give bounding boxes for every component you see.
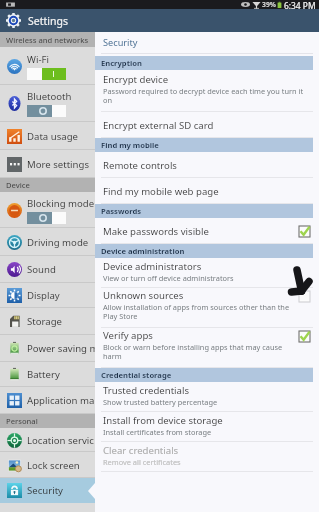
staticText: Lock screen [27,459,80,472]
staticText: Passwords [101,206,141,216]
button[interactable]: Encrypt device [95,70,319,112]
button[interactable]: Remote controls [95,152,319,178]
button[interactable]: Data usage [0,122,95,150]
staticText: View or turn off device administrators [103,273,234,283]
staticText: Security [27,484,64,497]
button[interactable]: Security [0,478,95,503]
staticText: Blocking mode [27,197,95,210]
staticText: Device administration [101,246,185,256]
staticText: Storage [27,315,62,328]
staticText: Display [27,289,60,302]
staticText: Wireless and networks [6,35,89,45]
button[interactable]: Lock screen [0,452,95,478]
button[interactable]: Clear credentials [95,442,319,472]
button[interactable]: Find my mobile web page [95,178,319,204]
button[interactable]: Blocking mode [0,192,95,228]
staticText: Clear credentials [103,444,179,457]
staticText: Password required to decrypt device each… [103,86,313,106]
staticText: Location servic [27,434,94,447]
staticText: 6:34 PM [284,0,316,9]
button[interactable]: Application ma [0,387,95,414]
button[interactable]: Trusted credentials [95,382,319,412]
staticText: Credential storage [101,370,172,380]
button[interactable]: Bluetooth [0,85,95,122]
staticText: Make passwords visible [103,225,209,238]
staticText: Security [103,36,138,49]
button[interactable]: Encrypt external SD card [95,112,319,138]
staticText: Block or warn before installing apps tha… [103,342,293,362]
staticText: Device administrators [103,260,202,273]
staticText: Trusted credentials [103,384,190,397]
staticText: Verify apps [103,329,153,342]
staticText: Allow installation of apps from sources … [103,302,293,322]
staticText: Encryption [101,58,142,68]
staticText: 39% [262,0,276,9]
staticText: Bluetooth [27,90,72,103]
staticText: Encrypt external SD card [103,119,214,132]
staticText: Battery [27,368,60,381]
staticText: Find my mobile web page [103,185,219,198]
staticText: Unknown sources [103,289,184,302]
staticText: Remove all certificates [103,457,181,467]
button[interactable]: More settings [0,150,95,178]
staticText: Show trusted battery percentage [103,397,218,407]
staticText: Device [6,180,30,190]
staticText: Find my mobile [101,140,159,150]
staticText: Personal [6,416,38,426]
button[interactable]: Wi-Fi [0,47,95,85]
button[interactable]: Sound [0,256,95,283]
button[interactable]: Location servic [0,428,95,452]
button[interactable]: Make passwords visible [95,218,319,244]
staticText: More settings [27,158,90,171]
button[interactable]: Verify apps [95,328,319,368]
button[interactable]: Power saving m [0,335,95,362]
staticText: Sound [27,263,56,276]
button[interactable]: Driving mode [0,228,95,256]
button[interactable]: Battery [0,362,95,387]
staticText: Driving mode [27,236,89,249]
staticText: Install certificates from storage [103,427,212,437]
button[interactable]: Install from device storage [95,412,319,442]
staticText: Power saving m [27,342,95,355]
staticText: Data usage [27,130,78,143]
staticText: Settings [28,14,68,28]
staticText: Remote controls [103,159,177,172]
button[interactable]: Storage [0,308,95,335]
button[interactable]: Display [0,283,95,308]
button[interactable]: Device administrators [95,258,319,288]
button[interactable]: Unknown sources [95,288,319,328]
staticText: Install from device storage [103,414,223,427]
staticText: Encrypt device [103,73,169,86]
staticText: Application ma [27,394,95,407]
staticText: Wi-Fi [27,53,49,66]
other: Settings [5,12,22,29]
